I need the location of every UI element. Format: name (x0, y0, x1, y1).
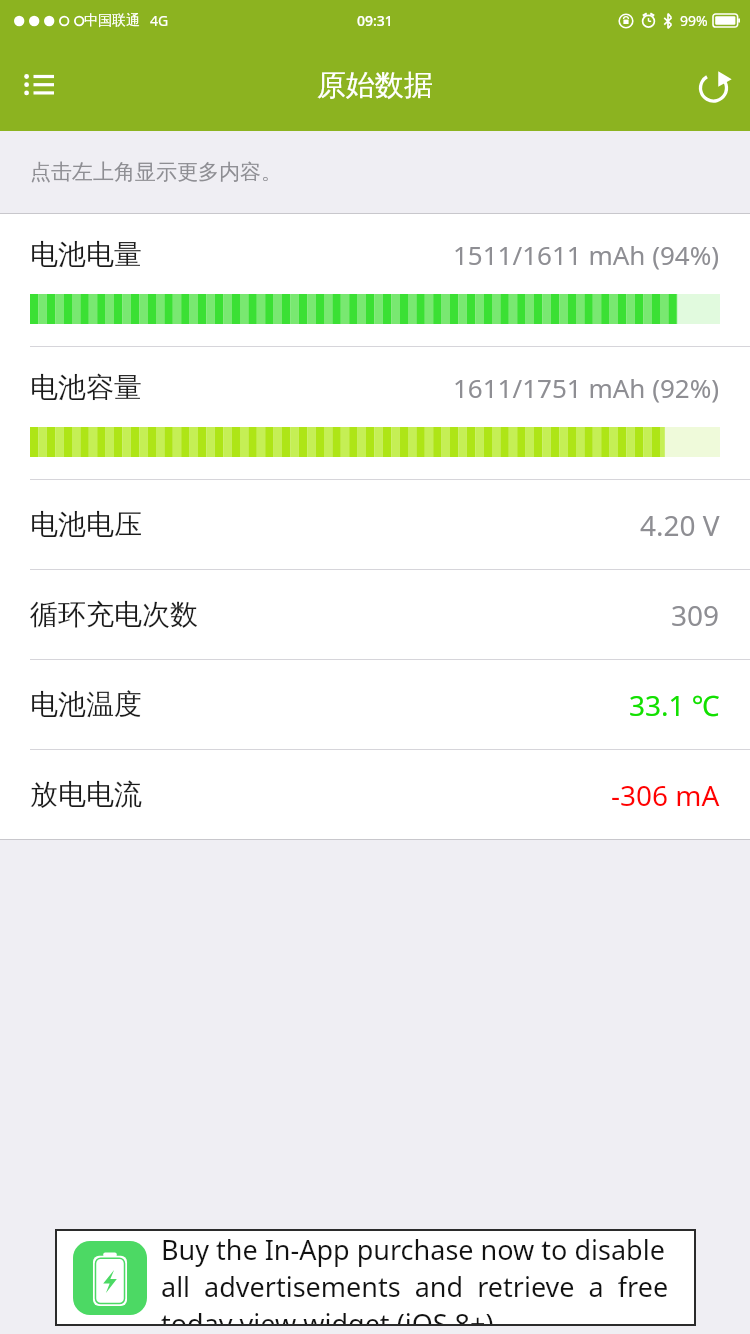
staticText: 中国联通 (84, 12, 140, 30)
staticText: 电池容量 (30, 370, 142, 405)
staticText: -306 mA (611, 776, 720, 814)
staticText: 99% (680, 11, 708, 30)
staticText: today view widget (iOS 8+). (161, 1305, 501, 1324)
staticText: 4G (150, 11, 169, 30)
staticText: 1611/1751 mAh (92%) (453, 370, 720, 405)
button[interactable]: Refresh (684, 57, 742, 115)
button[interactable]: 电池电压 (0, 480, 750, 569)
button[interactable]: Buy the In-App purchase now to disable (57, 1231, 694, 1324)
staticText: Buy the In-App purchase now to disable (161, 1231, 665, 1268)
button[interactable]: 放电电流 (0, 750, 750, 839)
button[interactable]: 电池电量 (0, 214, 750, 346)
button[interactable]: Menu (10, 57, 68, 115)
staticText: 4.20 V (640, 506, 720, 544)
staticText: 309 (671, 596, 720, 634)
staticText: 09:31 (357, 11, 393, 30)
staticText: 33.1 ℃ (629, 686, 720, 724)
staticText: 电池温度 (30, 687, 142, 722)
staticText: 放电电流 (30, 777, 142, 812)
staticText: 点击左上角显示更多内容。 (30, 159, 282, 185)
button[interactable]: 循环充电次数 (0, 570, 750, 659)
staticText: all advertisements and retrieve a free (161, 1268, 669, 1305)
staticText: 电池电压 (30, 507, 142, 542)
button[interactable]: 电池温度 (0, 660, 750, 749)
staticText: 原始数据 (317, 67, 433, 104)
staticText: 循环充电次数 (30, 597, 198, 632)
button[interactable]: 电池容量 (0, 347, 750, 479)
staticText: 电池电量 (30, 237, 142, 272)
staticText: 1511/1611 mAh (94%) (453, 237, 720, 272)
